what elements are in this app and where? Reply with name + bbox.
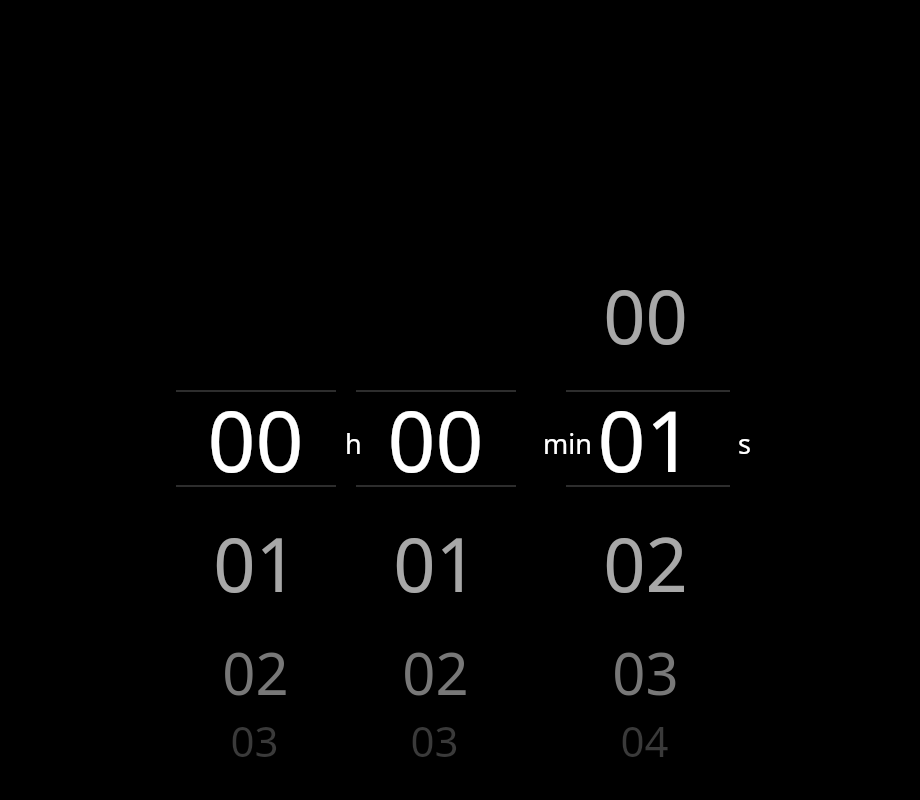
button[interactable]: Hours <box>176 250 336 790</box>
staticText: 01 <box>393 513 478 614</box>
button[interactable]: Seconds <box>566 250 730 790</box>
staticText: 02 <box>402 633 469 712</box>
staticText: 00 <box>207 382 304 496</box>
staticText: 00 <box>387 382 484 496</box>
button[interactable]: Minutes <box>356 250 516 790</box>
staticText: 03 <box>410 712 459 769</box>
staticText: 00 <box>603 265 688 366</box>
staticText: s <box>738 425 751 462</box>
staticText: 01 <box>597 382 694 496</box>
staticText: min <box>543 425 592 462</box>
staticText: 02 <box>603 513 688 614</box>
staticText: 02 <box>222 633 289 712</box>
staticText: h <box>345 425 362 462</box>
staticText: 03 <box>612 633 679 712</box>
staticText: 01 <box>213 513 298 614</box>
staticText: 04 <box>620 712 669 769</box>
staticText: 03 <box>230 712 279 769</box>
